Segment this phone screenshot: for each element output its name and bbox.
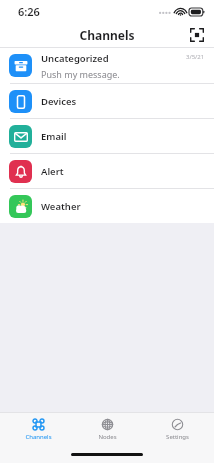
button[interactable]: Nodes (75, 413, 139, 445)
button[interactable]: Weather (0, 189, 214, 223)
button[interactable]: Alert (0, 154, 214, 188)
button[interactable]: Scan QR code (187, 25, 207, 45)
button[interactable]: Channels (6, 413, 70, 445)
staticText: Weather (41, 200, 81, 213)
staticText: Devices (41, 95, 77, 108)
staticText: 6:26 (18, 4, 40, 19)
button[interactable]: Email (0, 119, 214, 153)
staticText: 3/5/21 (186, 53, 205, 61)
staticText: Uncategorized (41, 52, 109, 65)
staticText: Channels (79, 27, 135, 43)
staticText: Settings (166, 433, 189, 441)
staticText: Nodes (98, 433, 117, 441)
staticText: Alert (41, 165, 64, 178)
staticText: Push my message. (41, 68, 120, 80)
staticText: Email (41, 130, 67, 143)
button[interactable]: Uncategorized (0, 48, 214, 83)
button[interactable]: Devices (0, 84, 214, 118)
staticText: Channels (25, 433, 52, 441)
button[interactable]: Settings (145, 413, 209, 445)
